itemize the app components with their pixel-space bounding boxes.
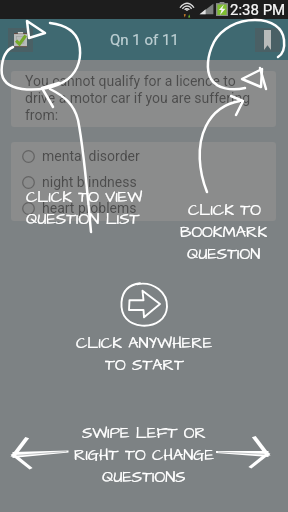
staticText: CLICK TO VIEW <box>26 186 143 208</box>
button[interactable]: mental disorder <box>11 143 276 169</box>
staticText: 2:38 PM <box>230 1 286 19</box>
staticText: CLICK TO <box>188 199 261 221</box>
staticText: You cannot qualify for a licence to driv… <box>25 73 265 124</box>
staticText: QUESTION LIST <box>26 208 140 230</box>
button[interactable]: View question list <box>8 28 33 52</box>
button[interactable]: Dismiss tutorial <box>0 0 288 512</box>
staticText: Qn 1 of 11 <box>110 31 179 49</box>
button[interactable]: night blindness <box>11 169 276 195</box>
staticText: night blindness <box>42 174 137 190</box>
button[interactable]: Bookmark question <box>255 28 280 52</box>
staticText: CLICK ANYWHERE <box>76 332 213 354</box>
staticText: heart problems <box>42 200 137 216</box>
staticText: RIGHT TO CHANGE <box>74 444 214 466</box>
button[interactable]: heart problems <box>11 195 276 221</box>
staticText: mental disorder <box>42 148 140 164</box>
staticText: TO START <box>105 354 184 376</box>
staticText: QUESTION <box>187 243 261 265</box>
staticText: SWIPE LEFT OR <box>82 422 206 444</box>
staticText: QUESTIONS <box>102 466 186 488</box>
staticText: BOOKMARK <box>180 221 268 243</box>
